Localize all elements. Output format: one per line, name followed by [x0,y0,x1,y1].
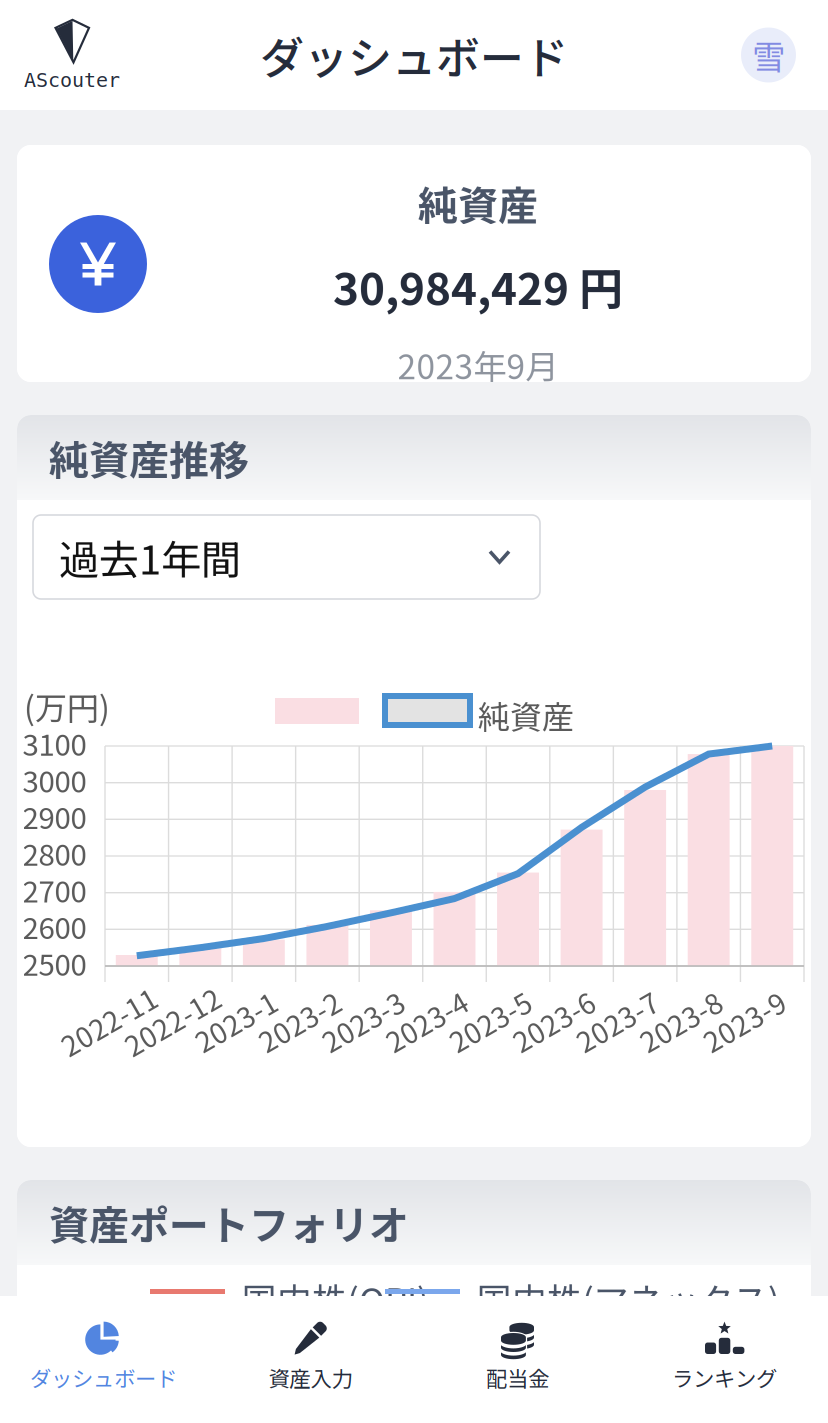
staticText: 2023年9月 [397,341,558,389]
staticText: 資産ポートフォリオ [49,1193,409,1251]
staticText: 3000 [22,758,86,801]
staticText: AScouter [24,68,120,92]
staticText: 国内株(マネックス) [477,1273,780,1323]
staticText: 純資産 [478,692,574,738]
staticText: 2022-12 [119,1001,225,1041]
button[interactable]: 配当金 [414,1296,621,1423]
staticText: 3100 [22,722,86,764]
staticText: 配当金 [486,1362,549,1393]
button[interactable]: ランキング [621,1296,828,1423]
staticText: 2023-9 [699,1001,789,1041]
staticText: 2600 [22,905,86,948]
staticText: 2023-3 [318,1001,408,1041]
staticText: 国内株(ORI) [242,1273,429,1323]
staticText: 2023-6 [509,1001,599,1041]
staticText: 2023-1 [191,1001,281,1041]
staticText: 2022-11 [56,1001,162,1041]
staticText: 純資産推移 [49,428,249,486]
staticText: 2700 [22,868,86,911]
staticText: 2500 [22,942,86,984]
staticText: 純資産 [418,174,538,232]
staticText: 2023-4 [381,1001,471,1041]
button[interactable]: AScouter [7,15,137,95]
staticText: ランキング [672,1362,777,1393]
staticText: 2023-7 [572,1001,662,1041]
staticText: 資産入力 [268,1362,352,1393]
button[interactable]: Profile [741,27,796,82]
staticText: 2800 [22,832,86,874]
staticText: 30,984,429 円 [333,254,623,318]
staticText: ダッシュボード [260,23,568,87]
staticText: 2023-2 [254,1001,344,1041]
staticText: 2900 [22,795,86,838]
staticText: 過去1年間 [59,528,241,586]
button[interactable]: ダッシュボード [0,1296,207,1423]
staticText: 2023-8 [636,1001,726,1041]
button[interactable]: 資産入力 [207,1296,414,1423]
staticText: 2023-5 [445,1001,535,1041]
staticText: (万円) [24,683,110,729]
staticText: ダッシュボード [30,1362,177,1393]
button[interactable]: 過去1年間 [33,515,540,599]
staticText: 雪 [752,31,785,79]
